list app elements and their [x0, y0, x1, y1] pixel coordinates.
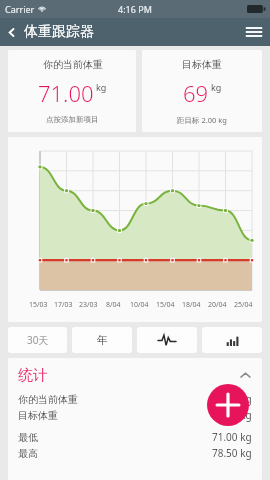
- staticText: 体重跟踪器: [24, 23, 94, 41]
- staticText: 69.00 kg: [212, 408, 252, 422]
- staticText: 你的当前体重: [43, 58, 103, 71]
- staticText: 最高: [18, 447, 38, 460]
- staticText: 目标体重: [182, 58, 222, 71]
- button[interactable]: Bar chart: [202, 327, 262, 353]
- staticText: 18/04: [182, 300, 201, 310]
- button[interactable]: Back: [0, 23, 100, 41]
- button[interactable]: 年: [72, 327, 132, 353]
- button[interactable]: 最低: [18, 430, 252, 444]
- staticText: 71.00 kg: [212, 430, 252, 444]
- staticText: 4:16 PM: [118, 3, 152, 15]
- staticText: kg: [96, 81, 107, 93]
- staticText: 69: [183, 78, 209, 108]
- other: Back: [6, 27, 17, 38]
- button[interactable]: 30天: [8, 327, 67, 353]
- button[interactable]: 你的当前体重: [18, 392, 252, 406]
- staticText: 30天: [27, 333, 49, 347]
- staticText: 年: [97, 333, 108, 347]
- staticText: 统计: [18, 366, 48, 385]
- button[interactable]: Menu: [244, 22, 264, 42]
- staticText: 15/04: [156, 300, 175, 310]
- staticText: 23/03: [79, 300, 98, 310]
- staticText: 17/03: [54, 300, 73, 310]
- staticText: 距目标 2.00 kg: [177, 115, 227, 125]
- button[interactable]: 你的当前体重: [8, 50, 136, 132]
- staticText: 你的当前体重: [18, 393, 78, 406]
- button[interactable]: 统计: [18, 366, 252, 385]
- button[interactable]: 目标体重: [18, 408, 252, 422]
- staticText: kg: [211, 81, 222, 93]
- staticText: 目标体重: [18, 409, 58, 422]
- staticText: Carrier: [5, 3, 35, 15]
- button[interactable]: 80: [8, 137, 262, 322]
- staticText: 最低: [18, 431, 38, 444]
- button[interactable]: 最高: [18, 446, 252, 460]
- button[interactable]: Add entry: [207, 384, 249, 426]
- other: Collapse: [239, 369, 252, 382]
- staticText: 25/04: [234, 300, 253, 310]
- staticText: 15/03: [29, 300, 48, 310]
- staticText: 71.00 kg: [212, 392, 252, 406]
- staticText: 8/04: [106, 300, 121, 310]
- button[interactable]: Line chart: [137, 327, 197, 353]
- staticText: 78.50 kg: [212, 446, 252, 460]
- button[interactable]: 目标体重: [142, 50, 262, 132]
- staticText: 71.00: [38, 78, 94, 108]
- staticText: 点按添加新项目: [46, 115, 99, 124]
- staticText: 10/04: [130, 300, 149, 310]
- staticText: 20/04: [208, 300, 227, 310]
